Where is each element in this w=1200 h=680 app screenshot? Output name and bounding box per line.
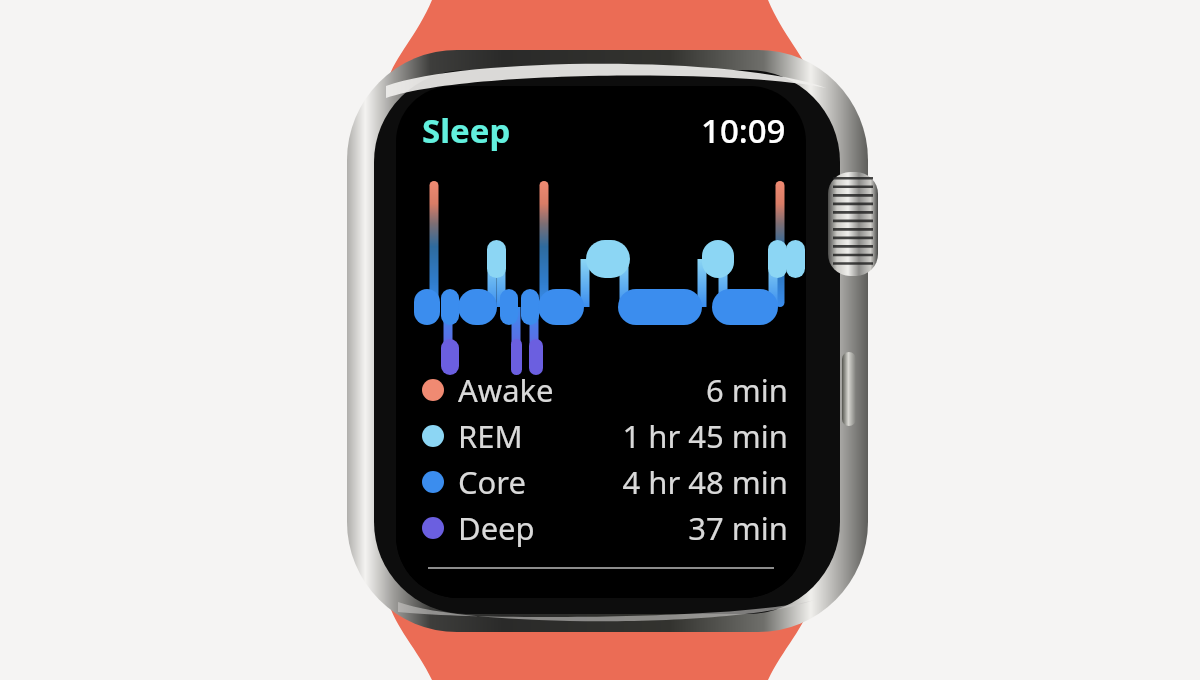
button[interactable]: Last 14 Days xyxy=(432,595,806,598)
button[interactable]: Side button xyxy=(842,352,856,426)
button[interactable]: Core xyxy=(396,459,806,505)
staticText: REM xyxy=(458,415,523,457)
button[interactable]: Digital Crown xyxy=(828,172,878,276)
button[interactable]: Awake xyxy=(396,367,806,413)
staticText: 37 min xyxy=(688,507,788,549)
staticText: Last 14 Days xyxy=(432,595,620,598)
staticText: Deep xyxy=(458,507,535,549)
staticText: Awake xyxy=(458,369,554,411)
staticText: 4 hr 48 min xyxy=(622,461,788,503)
button[interactable]: REM xyxy=(396,413,806,459)
button[interactable]: Deep xyxy=(396,505,806,551)
staticText: Core xyxy=(458,461,527,503)
button[interactable]: Sleep stages chart xyxy=(396,167,806,363)
staticText: 1 hr 45 min xyxy=(622,415,788,457)
staticText: 6 min xyxy=(706,369,788,411)
button[interactable]: Sleep xyxy=(422,108,511,153)
staticText: 10:09 xyxy=(701,108,786,153)
